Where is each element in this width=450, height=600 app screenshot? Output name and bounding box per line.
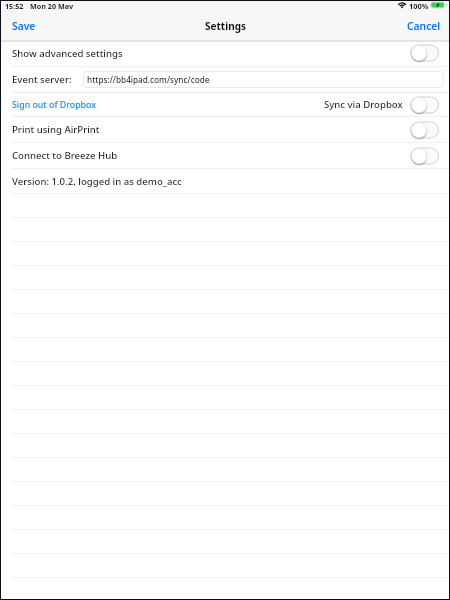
button[interactable]: Cancel	[399, 16, 449, 36]
staticText: Sign out of Dropbox	[12, 99, 97, 111]
button[interactable]: Show advanced settings toggle	[410, 44, 439, 62]
button[interactable]: Show advanced settings	[1, 42, 449, 66]
staticText: Print using AirPrint	[12, 123, 100, 136]
button[interactable]: Connect to Breeze Hub	[1, 143, 449, 168]
button[interactable]: Save	[1, 16, 44, 36]
button[interactable]: https://bb4ipad.com/sync/code	[83, 71, 444, 88]
staticText: Show advanced settings	[12, 47, 123, 60]
staticText: 15:52	[5, 1, 24, 9]
staticText: Cancel	[407, 19, 441, 33]
button[interactable]: Sign out of Dropbox	[12, 99, 97, 111]
staticText: Save	[12, 19, 36, 33]
staticText: Connect to Breeze Hub	[12, 149, 118, 162]
staticText: Version: 1.0.2, logged in as demo_acc	[12, 175, 182, 188]
staticText: Sync via Dropbox	[324, 98, 403, 111]
button[interactable]: Connect to Breeze Hub toggle	[410, 147, 439, 165]
staticText: Mon 20 May	[30, 1, 74, 9]
staticText: 100%	[409, 1, 429, 9]
staticText: Settings	[205, 19, 246, 33]
staticText: https://bb4ipad.com/sync/code	[87, 74, 210, 85]
button[interactable]: Print using AirPrint toggle	[410, 121, 439, 139]
staticText: Event server:	[12, 73, 72, 86]
button[interactable]: Sync via Dropbox toggle	[410, 96, 439, 114]
button[interactable]: Print using AirPrint	[1, 117, 449, 142]
